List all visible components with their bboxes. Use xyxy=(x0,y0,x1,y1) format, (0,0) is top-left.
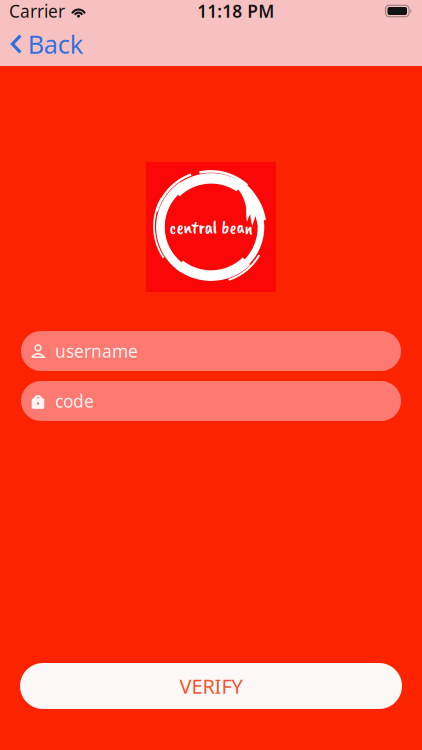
staticText: 11:18 PM xyxy=(197,0,274,22)
button[interactable]: username xyxy=(21,331,401,371)
button[interactable]: code xyxy=(21,381,401,421)
button[interactable]: VERIFY xyxy=(20,663,402,709)
staticText: username xyxy=(55,339,138,362)
staticText: Back xyxy=(28,27,84,61)
staticText: central bean xyxy=(169,215,252,239)
staticText: code xyxy=(55,389,94,412)
staticText: VERIFY xyxy=(179,673,242,699)
button[interactable]: Back xyxy=(0,22,94,66)
staticText: Carrier xyxy=(9,0,65,22)
